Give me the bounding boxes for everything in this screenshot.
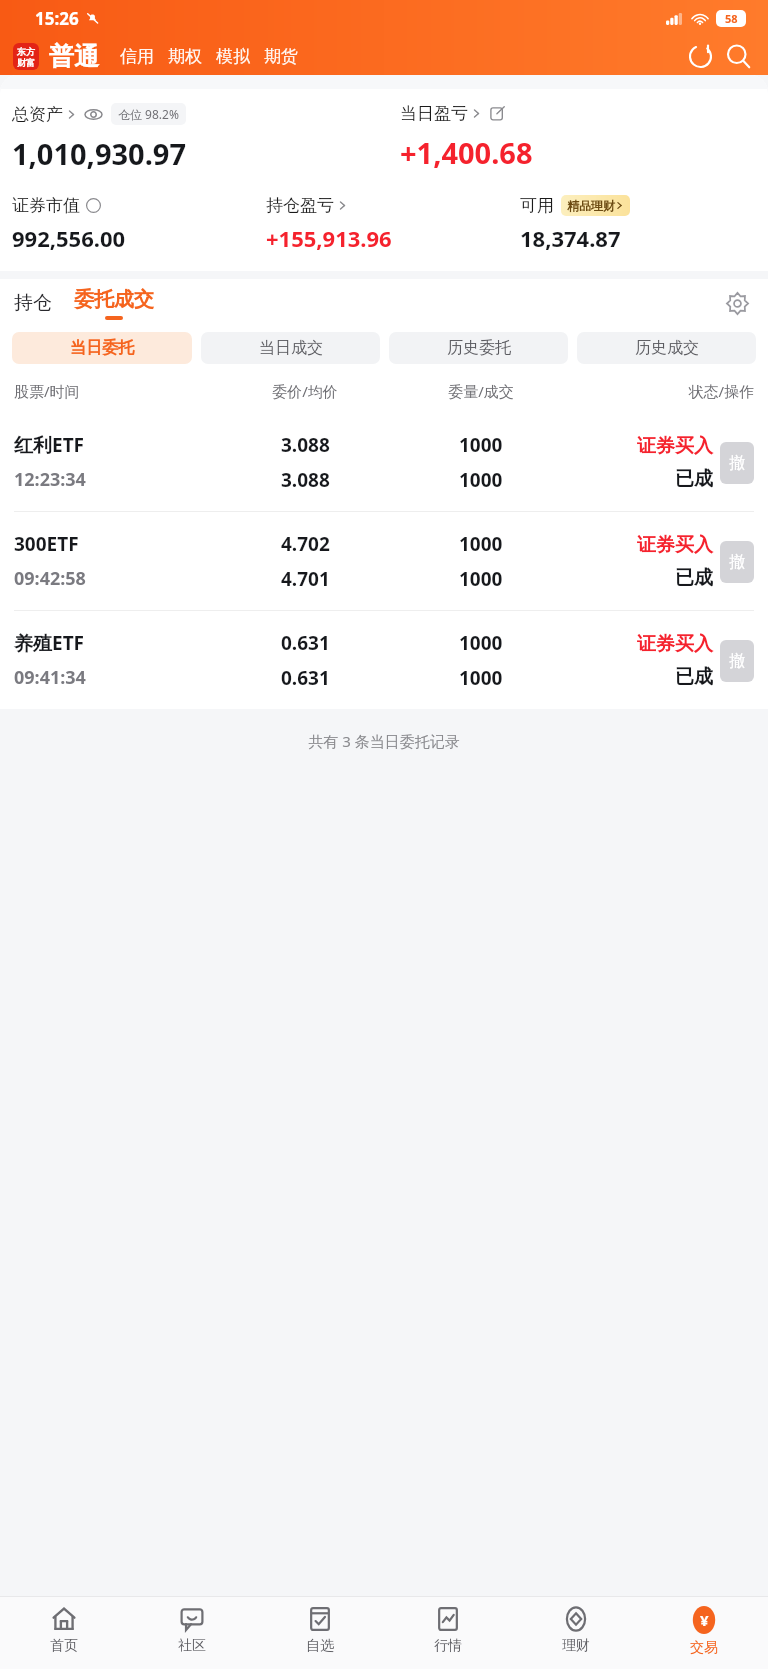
staticText: 0.631 <box>281 630 330 656</box>
staticText: 09:41:34 <box>14 665 86 690</box>
button[interactable]: 总资产 <box>12 103 186 125</box>
staticText: 社区 <box>178 1637 206 1655</box>
staticText: 已成 <box>675 467 713 491</box>
staticText: 红利ETF <box>14 432 85 458</box>
staticText: 1000 <box>459 566 503 592</box>
staticText: 行情 <box>434 1637 462 1655</box>
button[interactable]: 行情 <box>384 1597 512 1669</box>
button[interactable]: 撤 <box>720 442 754 484</box>
staticText: 期货 <box>264 46 298 67</box>
staticText: 1000 <box>459 432 503 458</box>
staticText: +1,400.68 <box>400 133 533 172</box>
button[interactable]: 当日委托 <box>12 332 192 364</box>
button[interactable]: 期货 <box>257 46 305 67</box>
staticText: 股票/时间 <box>14 381 217 401</box>
staticText: 模拟 <box>216 46 250 67</box>
staticText: ¥ <box>700 1610 709 1630</box>
staticText: 4.701 <box>281 566 330 592</box>
button[interactable]: 撤 <box>720 640 754 682</box>
staticText: 3.088 <box>281 432 330 458</box>
staticText: 1000 <box>459 665 503 691</box>
button[interactable]: 红利ETF <box>0 413 768 511</box>
staticText: 历史委托 <box>447 338 511 358</box>
staticText: 首页 <box>50 1637 78 1655</box>
other: Toggle visibility <box>85 106 102 123</box>
staticText: 1,010,930.97 <box>12 134 186 173</box>
staticText: 养殖ETF <box>14 630 85 656</box>
staticText: 持仓 <box>14 291 52 315</box>
staticText: 持仓盈亏 <box>266 195 334 216</box>
staticText: 证券买入 <box>637 632 713 656</box>
staticText: 58 <box>725 11 738 26</box>
staticText: 委托成交 <box>74 287 154 312</box>
staticText: 普通 <box>49 41 99 72</box>
staticText: 当日委托 <box>70 338 134 358</box>
staticText: 12:23:34 <box>14 467 86 492</box>
staticText: 精品理财 <box>567 198 615 213</box>
button[interactable]: 历史委托 <box>389 332 568 364</box>
button[interactable]: 模拟 <box>209 46 257 67</box>
staticText: 18,374.87 <box>520 223 621 253</box>
staticText: 交易 <box>690 1639 718 1657</box>
staticText: 期权 <box>168 46 202 67</box>
staticText: 1000 <box>459 531 503 557</box>
staticText: 委价/均价 <box>217 381 393 401</box>
staticText: 992,556.00 <box>12 223 126 253</box>
button[interactable]: 信用 <box>113 46 161 67</box>
staticText: 理财 <box>562 1637 590 1655</box>
staticText: 0.631 <box>281 665 330 691</box>
staticText: +155,913.96 <box>266 223 392 253</box>
button[interactable]: 持仓 <box>14 291 58 315</box>
button[interactable]: 精品理财 <box>561 195 630 216</box>
staticText: 3.088 <box>281 467 330 493</box>
staticText: 证券买入 <box>637 434 713 458</box>
button[interactable]: 期权 <box>161 46 209 67</box>
staticText: 撤 <box>729 453 745 473</box>
staticText: 证券市值 <box>12 195 80 216</box>
staticText: 撤 <box>729 552 745 572</box>
button[interactable]: ¥ <box>640 1597 768 1669</box>
other: Open detail <box>490 106 505 121</box>
button[interactable]: 普通 <box>49 41 99 72</box>
staticText: 信用 <box>120 46 154 67</box>
staticText: 1000 <box>459 467 503 493</box>
button[interactable]: 社区 <box>128 1597 256 1669</box>
button[interactable]: 自选 <box>256 1597 384 1669</box>
button[interactable]: Settings <box>720 286 754 320</box>
button[interactable]: 首页 <box>0 1597 128 1669</box>
button[interactable]: 撤 <box>720 541 754 583</box>
button[interactable]: 300ETF <box>0 512 768 610</box>
staticText: 财富 <box>17 57 35 68</box>
button[interactable]: 理财 <box>512 1597 640 1669</box>
button[interactable]: 当日成交 <box>201 332 380 364</box>
button[interactable]: 历史成交 <box>577 332 756 364</box>
staticText: 历史成交 <box>635 338 699 358</box>
button[interactable]: 委托成交 <box>74 287 154 320</box>
staticText: 当日成交 <box>259 338 323 358</box>
staticText: 证券买入 <box>637 533 713 557</box>
staticText: 状态/操作 <box>569 381 754 401</box>
staticText: 总资产 <box>12 104 63 125</box>
staticText: 仓位 98.2% <box>118 106 179 122</box>
staticText: 15:26 <box>35 7 79 30</box>
staticText: 自选 <box>306 1637 334 1655</box>
staticText: 已成 <box>675 566 713 590</box>
staticText: 可用 <box>520 195 554 216</box>
staticText: 已成 <box>675 665 713 689</box>
button[interactable]: Search <box>721 39 755 73</box>
staticText: 4.702 <box>281 531 330 557</box>
button[interactable]: 养殖ETF <box>0 611 768 709</box>
staticText: 东方 <box>17 46 35 57</box>
staticText: 1000 <box>459 630 503 656</box>
button[interactable]: 当日盈亏 <box>400 103 505 124</box>
staticText: 委量/成交 <box>393 381 569 401</box>
staticText: 当日盈亏 <box>400 103 468 124</box>
staticText: 共有 3 条当日委托记录 <box>0 731 768 751</box>
staticText: 09:42:58 <box>14 566 86 591</box>
button[interactable]: Refresh <box>683 39 717 73</box>
staticText: 撤 <box>729 651 745 671</box>
button[interactable]: 持仓盈亏 <box>266 195 348 216</box>
staticText: 300ETF <box>14 531 79 557</box>
